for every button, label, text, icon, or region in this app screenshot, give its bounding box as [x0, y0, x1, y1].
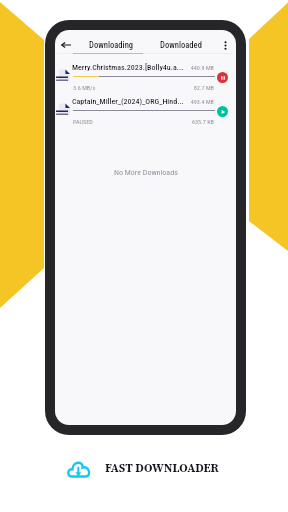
staticText: 82.7 MB [193, 84, 214, 91]
staticText: FAST DOWNLOADER [105, 460, 219, 475]
staticText: Captain_Miller_(2024)_ORG_Hind... [72, 97, 184, 106]
button[interactable]: Downloading [76, 35, 146, 55]
button[interactable]: Merry.Christmas.2023.[Bolly4u.a... [55, 54, 236, 88]
button[interactable]: Back [55, 35, 76, 55]
staticText: PAUSED [73, 118, 93, 125]
button[interactable]: Resume [217, 106, 228, 117]
staticText: Downloaded [160, 40, 202, 50]
button[interactable]: Downloaded [146, 35, 216, 55]
staticText: Downloading [89, 40, 134, 50]
staticText: 3.6 MB/s [73, 84, 96, 91]
button[interactable]: Captain_Miller_(2024)_ORG_Hind... [55, 88, 236, 122]
button[interactable]: Pause [217, 72, 228, 83]
staticText: No More Downloads [114, 168, 178, 177]
button[interactable]: More options [215, 35, 236, 55]
staticText: 440.9 MB [190, 64, 214, 71]
staticText: 635.7 KB [191, 118, 214, 125]
staticText: Merry.Christmas.2023.[Bolly4u.a... [72, 63, 184, 72]
staticText: 493.4 MB [190, 98, 214, 105]
